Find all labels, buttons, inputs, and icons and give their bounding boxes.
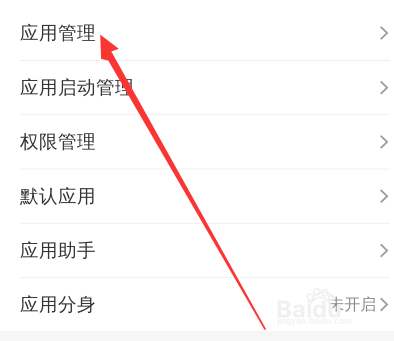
staticText: 应用启动管理 [20,76,134,99]
staticText: jingyan.baidu.com [277,316,351,326]
staticText: 权限管理 [20,130,96,154]
button[interactable]: 应用分身 [0,278,394,331]
staticText: 应用助手 [20,239,96,262]
button[interactable]: 权限管理 [0,115,394,169]
staticText: 应用分身 [20,293,96,316]
staticText: 默认应用 [20,185,96,208]
staticText: 应用管理 [20,21,96,45]
button[interactable]: 应用启动管理 [0,61,394,114]
staticText: 未开启 [328,294,376,315]
button[interactable]: 默认应用 [0,170,394,223]
button[interactable]: 应用管理 [0,0,394,60]
staticText: Baidu [276,294,342,323]
button[interactable]: 应用助手 [0,224,394,277]
